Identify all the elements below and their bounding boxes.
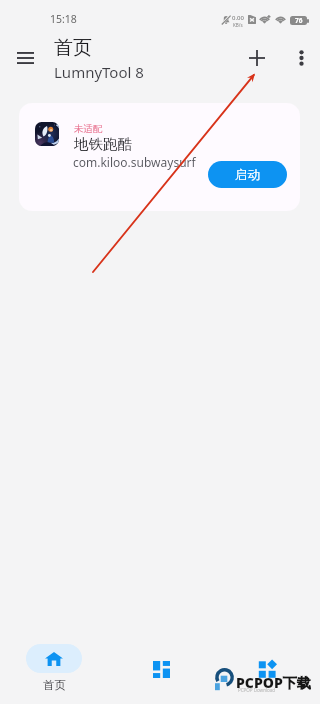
staticText: com.kiloo.subwaysurf <box>73 154 196 170</box>
staticText: 15:18 <box>50 12 77 26</box>
staticText: 启动 <box>235 167 260 183</box>
button[interactable]: Menu <box>5 40 45 76</box>
staticText: 地铁跑酷 <box>74 135 132 153</box>
staticText: 首页 <box>43 678 66 692</box>
button[interactable]: Apps <box>132 646 188 682</box>
staticText: 0.00 <box>232 14 244 22</box>
button[interactable]: 未适配 <box>19 103 300 211</box>
button[interactable]: 启动 <box>208 161 287 188</box>
button[interactable]: 首页 <box>26 644 82 692</box>
button[interactable]: Mine <box>238 646 294 682</box>
staticText: LumnyTool 8 <box>54 62 144 82</box>
staticText: 76 <box>295 16 303 25</box>
button[interactable]: More options <box>283 40 319 76</box>
staticText: PCPOP下载 <box>236 673 311 692</box>
staticText: PCPOP Download <box>238 687 276 693</box>
staticText: 未适配 <box>74 123 103 135</box>
staticText: 首页 <box>54 36 92 60</box>
staticText: KB/s <box>233 22 243 28</box>
button[interactable]: Add <box>239 40 275 76</box>
